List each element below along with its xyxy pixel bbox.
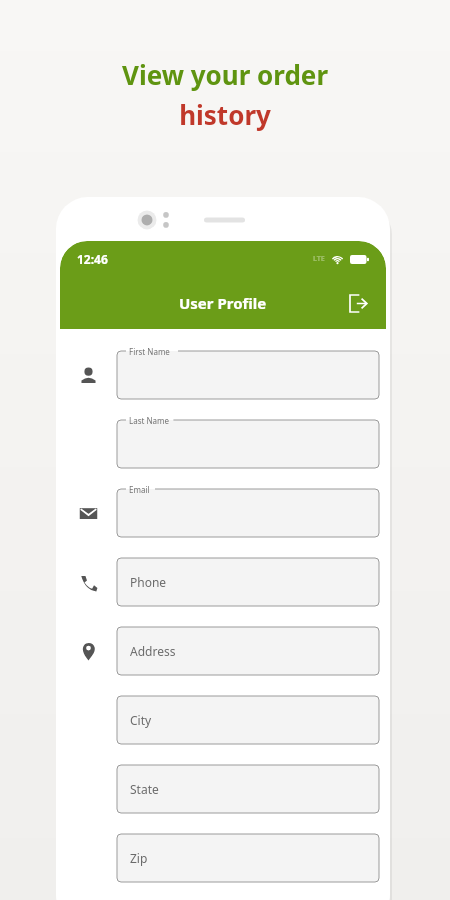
button[interactable]: First Name [117, 351, 379, 399]
staticText: Address [130, 643, 176, 659]
staticText: LTE [313, 254, 325, 264]
button[interactable]: Last Name [117, 420, 379, 468]
staticText: View your order [122, 57, 328, 92]
button[interactable]: Address [117, 627, 379, 675]
button[interactable]: Zip [117, 834, 379, 882]
button[interactable]: Log out [341, 286, 375, 320]
staticText: history [179, 97, 271, 132]
staticText: Last Name [129, 415, 170, 426]
staticText: Email [129, 484, 150, 495]
staticText: Zip [130, 850, 148, 866]
staticText: Phone [130, 574, 167, 590]
staticText: First Name [129, 346, 170, 357]
staticText: User Profile [179, 293, 267, 313]
button[interactable]: Phone [117, 558, 379, 606]
button[interactable]: State [117, 765, 379, 813]
staticText: State [130, 781, 159, 797]
staticText: City [130, 712, 152, 728]
button[interactable]: City [117, 696, 379, 744]
staticText: 12:46 [77, 251, 108, 267]
button[interactable]: Email [117, 489, 379, 537]
